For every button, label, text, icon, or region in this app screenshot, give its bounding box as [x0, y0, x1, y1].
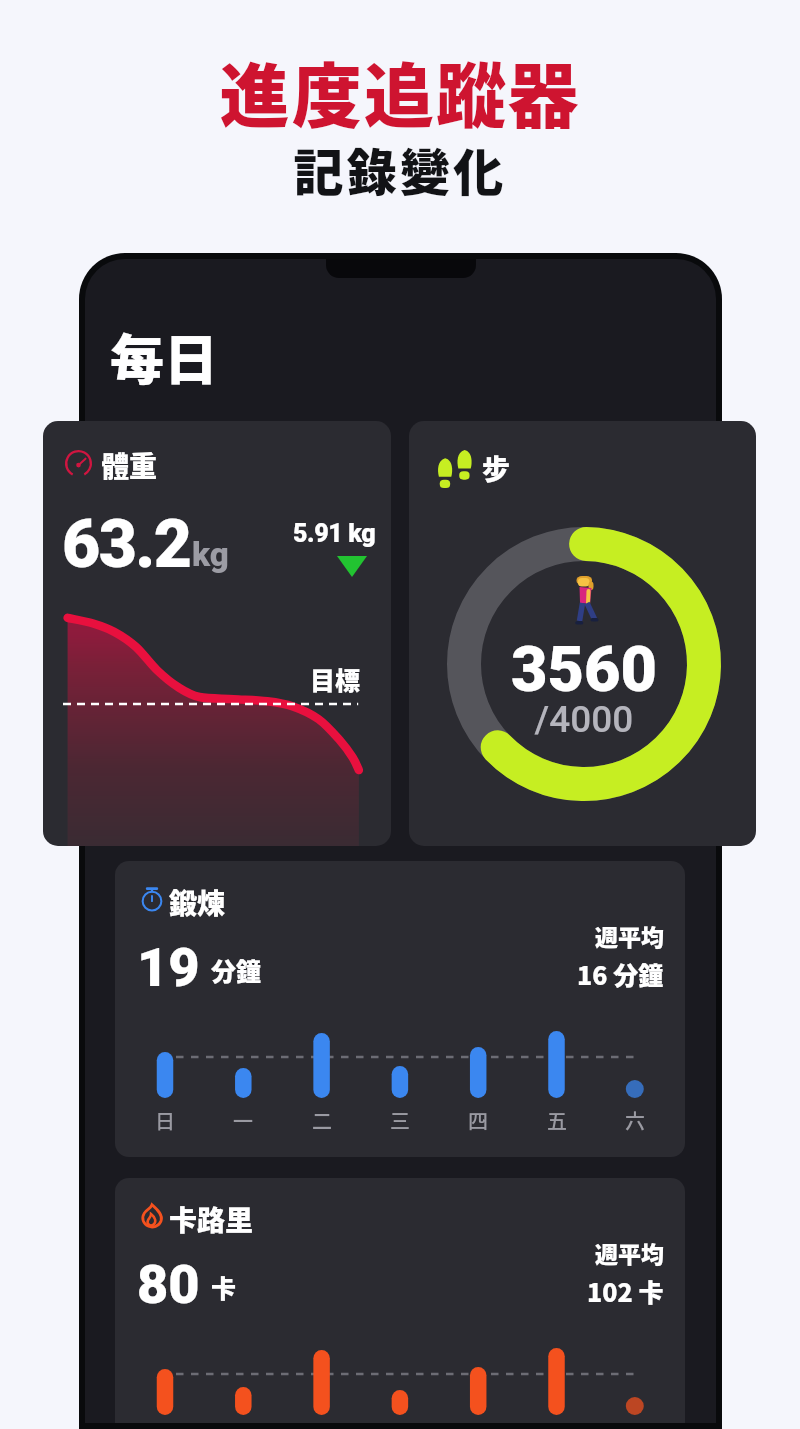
staticText: 二: [312, 1106, 332, 1135]
staticText: 週平均: [595, 919, 664, 952]
staticText: 記錄變化: [0, 133, 800, 205]
staticText: 16 分鐘: [577, 956, 664, 992]
staticText: /4000: [447, 698, 721, 741]
staticText: 日: [155, 1106, 175, 1135]
staticText: 三: [390, 1106, 410, 1135]
other: Steps: [437, 450, 473, 488]
staticText: 卡路里: [169, 1199, 254, 1240]
staticText: 3560: [447, 633, 721, 707]
other: Weight: [65, 450, 92, 477]
staticText: 5.91 kg: [293, 519, 376, 548]
staticText: 五: [547, 1106, 567, 1135]
staticText: 鍛煉: [169, 882, 226, 923]
staticText: 目標: [310, 661, 361, 697]
button[interactable]: Weight: [43, 421, 391, 846]
staticText: 每日: [110, 317, 218, 395]
staticText: 80: [137, 1253, 200, 1316]
staticText: 63.2: [62, 506, 191, 583]
staticText: 進度追蹤器: [0, 41, 800, 142]
staticText: 四: [468, 1106, 488, 1135]
staticText: 19: [137, 936, 200, 999]
staticText: 102 卡: [587, 1273, 664, 1309]
staticText: 分鐘: [211, 952, 262, 988]
staticText: 六: [625, 1106, 645, 1135]
button[interactable]: Steps: [409, 421, 756, 846]
staticText: 週平均: [595, 1236, 664, 1269]
staticText: kg: [192, 535, 229, 574]
button[interactable]: 卡路里: [115, 1178, 685, 1423]
staticText: 卡: [211, 1269, 237, 1305]
staticText: 體重: [101, 445, 158, 486]
button[interactable]: 鍛煉: [115, 861, 685, 1157]
staticText: 步: [482, 448, 511, 489]
staticText: 一: [233, 1106, 253, 1135]
